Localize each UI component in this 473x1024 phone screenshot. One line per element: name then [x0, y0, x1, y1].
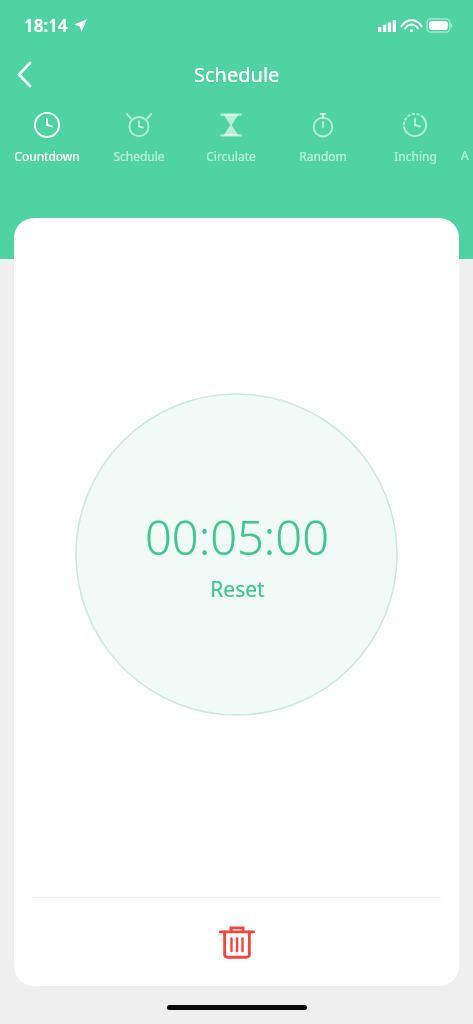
staticText: 00:05:00: [145, 505, 329, 569]
staticText: Random: [299, 148, 347, 164]
button[interactable]: Random: [277, 110, 369, 184]
staticText: Schedule: [194, 61, 280, 88]
button[interactable]: Inching: [369, 110, 461, 184]
button[interactable]: Delete: [14, 898, 459, 986]
staticText: Circulate: [206, 148, 256, 164]
staticText: Schedule: [113, 148, 165, 164]
button[interactable]: Countdown: [0, 110, 93, 184]
staticText: Inching: [394, 148, 437, 164]
staticText: A: [461, 147, 469, 163]
button[interactable]: Circulate: [185, 110, 277, 184]
button[interactable]: Back: [0, 50, 48, 98]
staticText: Reset: [210, 575, 265, 604]
staticText: Countdown: [14, 148, 80, 164]
button[interactable]: 00:05:00: [75, 393, 398, 716]
staticText: 18:14: [24, 14, 68, 37]
button[interactable]: Schedule: [93, 110, 185, 184]
